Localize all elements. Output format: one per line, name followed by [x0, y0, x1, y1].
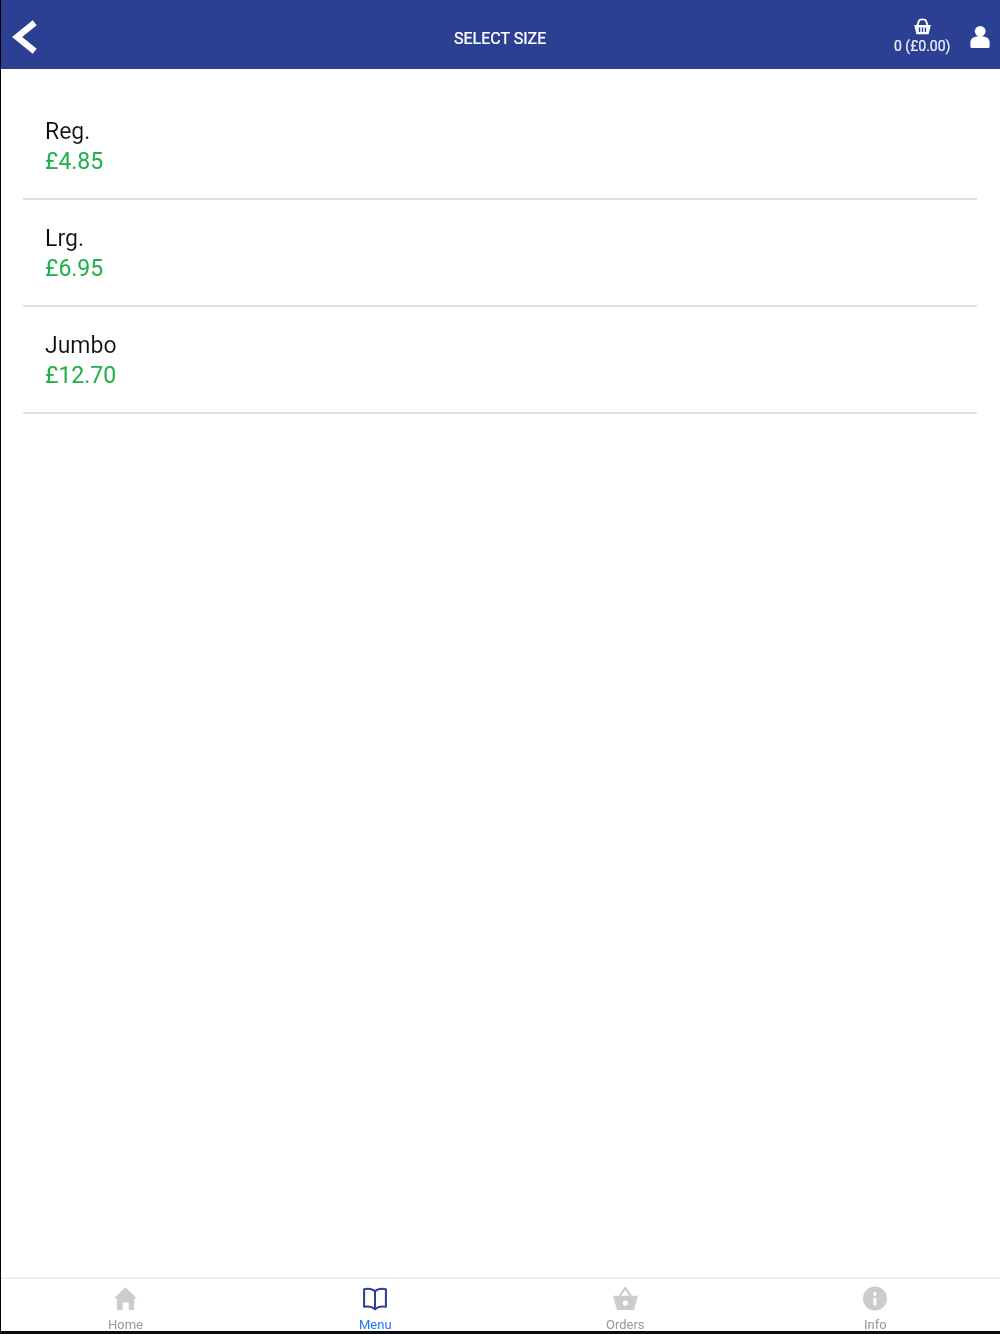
staticText: Reg.	[45, 118, 91, 145]
staticText: 0 (£0.00)	[894, 38, 951, 54]
staticText: SELECT SIZE	[454, 29, 547, 48]
staticText: Info	[864, 1317, 887, 1332]
staticText: £6.95	[45, 255, 104, 282]
staticText: Jumbo	[45, 332, 117, 359]
staticText: Lrg.	[45, 225, 84, 252]
staticText: Orders	[606, 1317, 645, 1332]
button[interactable]: Basket	[888, 12, 956, 58]
button[interactable]: Jumbo	[0, 307, 1000, 414]
button[interactable]: Orders	[500, 1279, 750, 1334]
button[interactable]: Menu	[250, 1279, 500, 1334]
staticText: £12.70	[45, 362, 117, 389]
button[interactable]: Lrg.	[0, 200, 1000, 307]
button[interactable]: Back	[0, 0, 58, 69]
button[interactable]: Home	[0, 1279, 250, 1334]
staticText: £4.85	[45, 148, 104, 175]
staticText: Home	[108, 1317, 143, 1332]
button[interactable]: Info	[750, 1279, 1000, 1334]
button[interactable]: Reg.	[0, 93, 1000, 200]
button[interactable]: Account	[959, 16, 1000, 58]
staticText: Menu	[359, 1317, 392, 1332]
